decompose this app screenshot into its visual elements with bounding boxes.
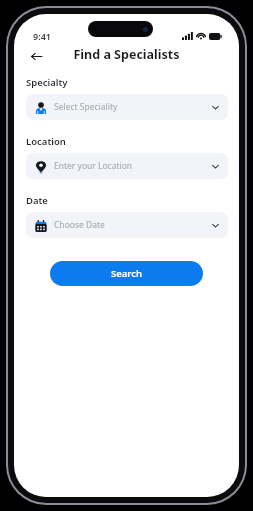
staticText: Location <box>26 135 66 148</box>
staticText: Specialty <box>26 76 68 89</box>
button[interactable]: Choose Date <box>26 212 228 238</box>
staticText: 9:41 <box>33 30 51 42</box>
staticText: Find a Specialists <box>14 46 239 63</box>
button[interactable]: Enter your Location <box>26 153 228 179</box>
staticText: Enter your Location <box>54 160 133 172</box>
button[interactable]: Search <box>50 261 203 286</box>
button[interactable]: Select Speciality <box>26 94 228 120</box>
staticText: Date <box>26 194 48 207</box>
button[interactable]: Back <box>22 42 50 70</box>
staticText: Select Speciality <box>54 101 118 113</box>
staticText: Search <box>111 267 143 280</box>
staticText: Choose Date <box>54 219 105 231</box>
